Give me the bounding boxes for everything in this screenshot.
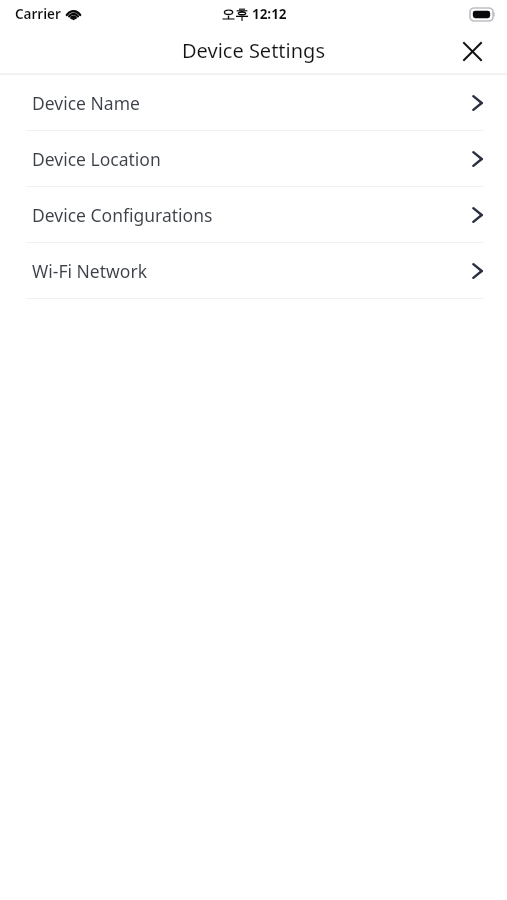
button[interactable]: Device Configurations — [0, 187, 507, 242]
staticText: 오후 12:12 — [221, 5, 287, 23]
button[interactable]: Close — [459, 38, 485, 64]
staticText: Wi-Fi Network — [32, 259, 147, 283]
staticText: Device Location — [32, 147, 161, 171]
button[interactable]: Wi-Fi Network — [0, 243, 507, 298]
button[interactable]: Device Location — [0, 131, 507, 186]
button[interactable]: Device Name — [0, 75, 507, 130]
staticText: Carrier — [15, 5, 61, 23]
staticText: Device Configurations — [32, 203, 213, 227]
staticText: Device Name — [32, 91, 140, 115]
staticText: Device Settings — [182, 37, 325, 64]
